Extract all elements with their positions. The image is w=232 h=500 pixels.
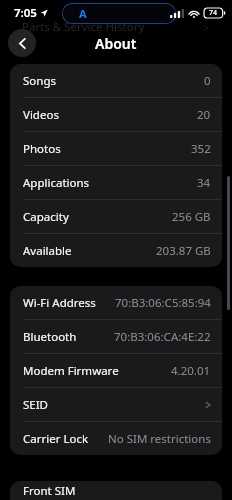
- staticText: SEID: [23, 397, 49, 413]
- staticText: Front SIM: [23, 483, 76, 499]
- button[interactable]: SEID: [10, 388, 222, 421]
- button[interactable]: Applications: [10, 166, 222, 199]
- button[interactable]: Wi-Fi Address: [10, 286, 222, 319]
- button[interactable]: Back: [8, 29, 36, 57]
- staticText: Photos: [23, 141, 61, 157]
- staticText: 4.20.01: [171, 363, 211, 379]
- button[interactable]: Modem Firmware: [10, 354, 222, 387]
- button[interactable]: Photos: [10, 132, 222, 165]
- button[interactable]: Videos: [10, 98, 222, 131]
- staticText: 7:05: [14, 5, 37, 21]
- staticText: 70:B3:06:CA:4E:22: [114, 329, 211, 345]
- staticText: Wi-Fi Address: [23, 295, 96, 311]
- staticText: 256 GB: [172, 209, 211, 225]
- staticText: 20: [197, 107, 211, 123]
- staticText: Songs: [23, 73, 56, 89]
- staticText: Bluetooth: [23, 329, 77, 345]
- staticText: 0: [204, 73, 211, 89]
- staticText: Modem Firmware: [23, 363, 119, 379]
- staticText: No SIM restrictions: [108, 431, 211, 447]
- button[interactable]: Carrier Lock: [10, 422, 222, 455]
- staticText: 34: [197, 175, 211, 191]
- staticText: A: [79, 6, 87, 21]
- button[interactable]: Capacity: [10, 200, 222, 233]
- button[interactable]: Songs: [10, 64, 222, 97]
- staticText: Carrier Lock: [23, 431, 89, 447]
- staticText: Available: [23, 243, 72, 259]
- staticText: Videos: [23, 107, 59, 123]
- staticText: 74: [209, 8, 218, 18]
- staticText: Parts & Service History: [22, 19, 145, 35]
- staticText: 203.87 GB: [156, 243, 211, 259]
- staticText: About: [95, 34, 137, 53]
- button[interactable]: Front SIM: [10, 481, 222, 500]
- staticText: >: [203, 20, 210, 35]
- staticText: 70:B3:06:C5:85:94: [115, 295, 211, 311]
- staticText: Applications: [23, 175, 90, 191]
- staticText: 352: [191, 141, 211, 157]
- button[interactable]: Bluetooth: [10, 320, 222, 353]
- button[interactable]: Available: [10, 234, 222, 267]
- staticText: Capacity: [23, 209, 69, 225]
